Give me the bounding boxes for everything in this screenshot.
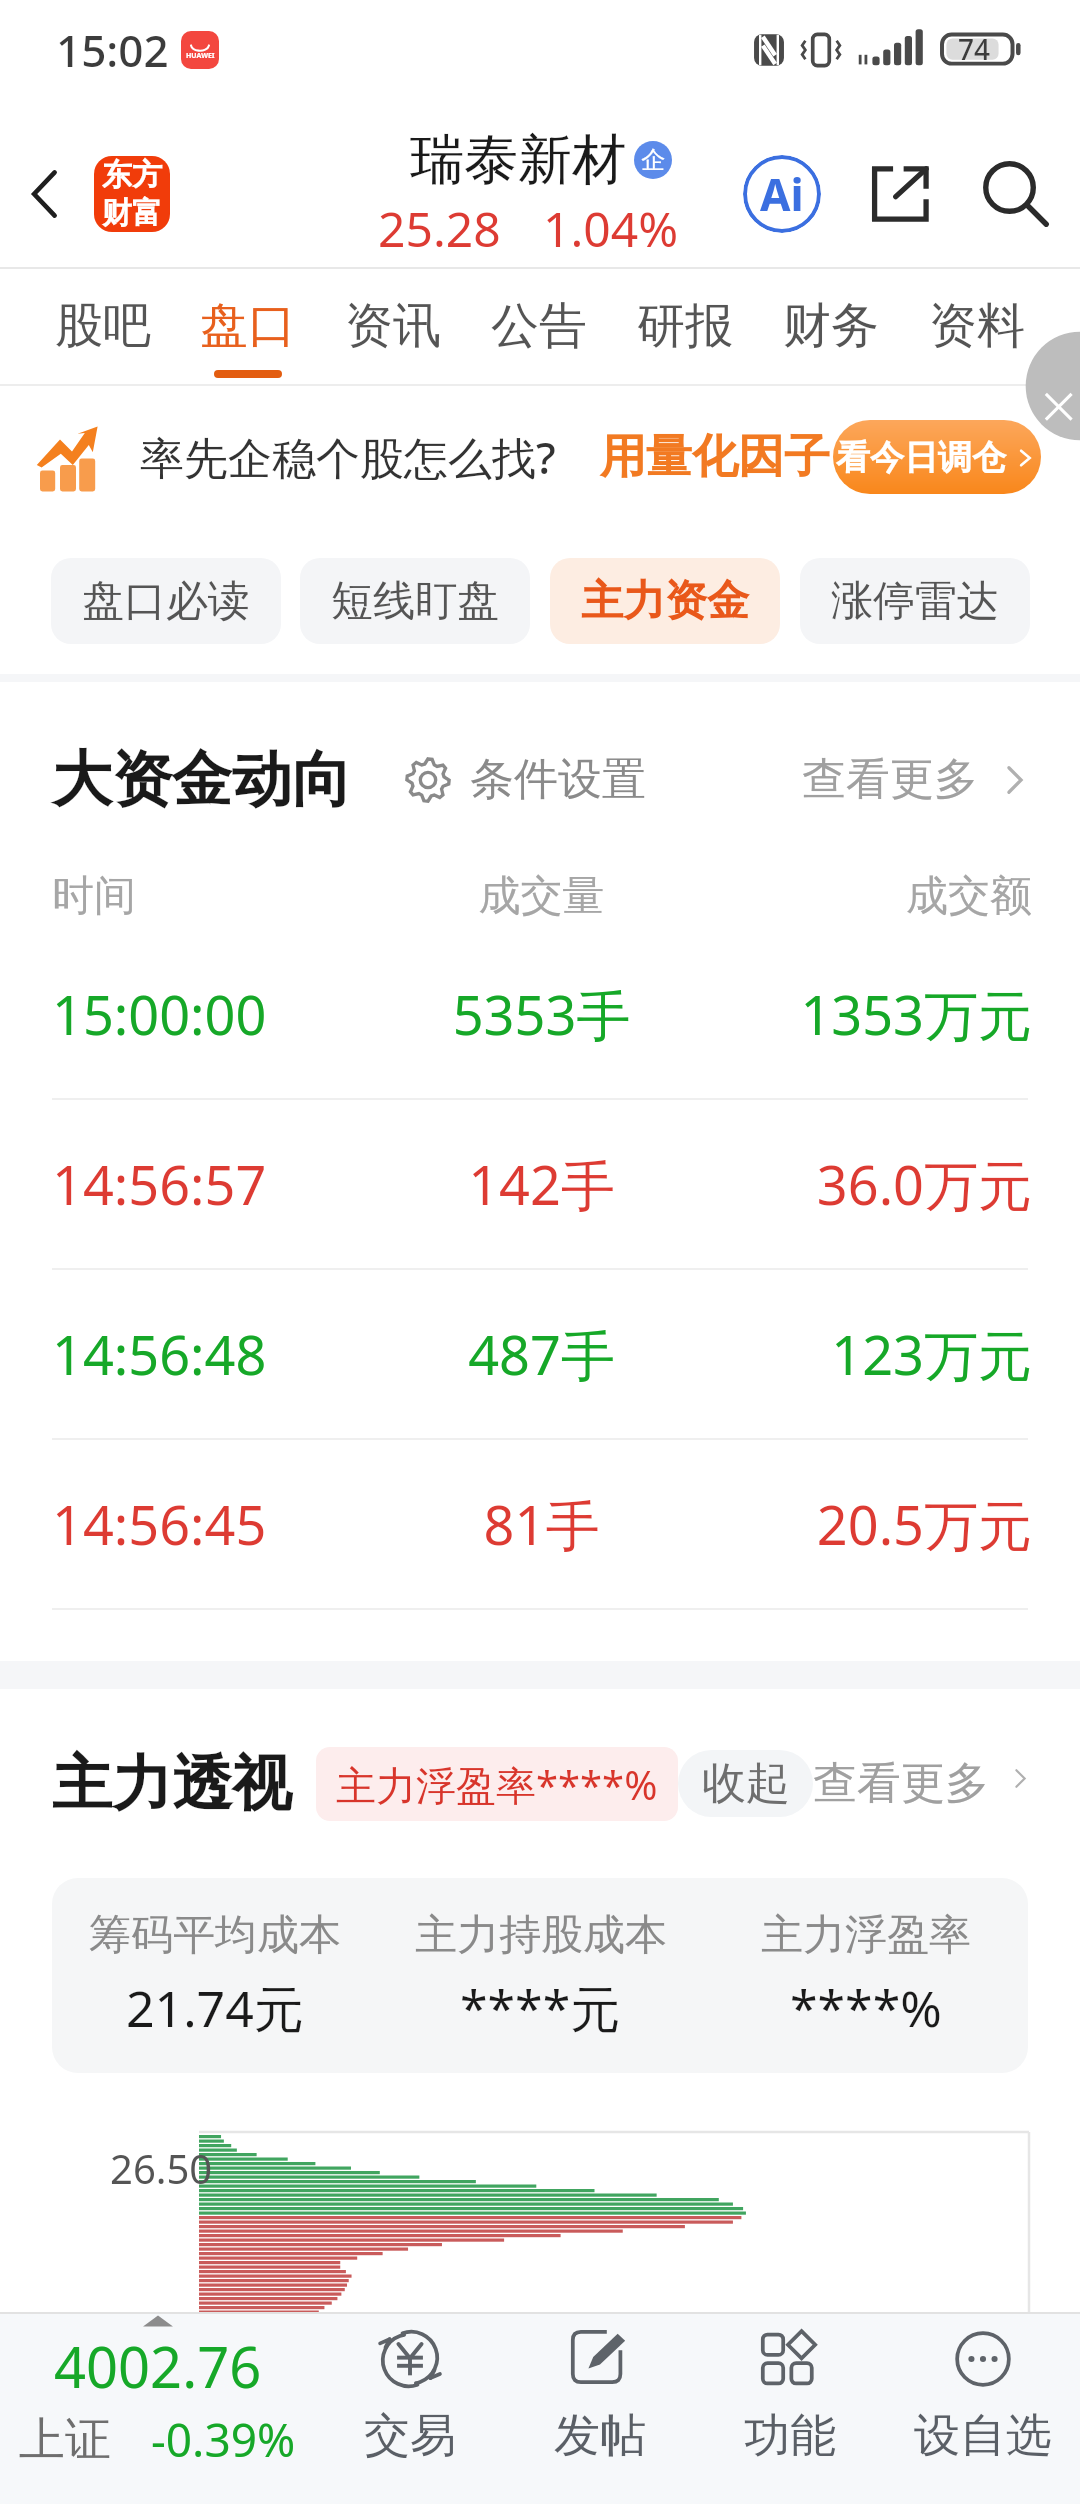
staticText: 主力浮盈率	[761, 1909, 971, 1962]
button[interactable]: East Money	[94, 156, 170, 232]
staticText: 股吧	[55, 296, 151, 356]
staticText: 主力透视	[52, 1746, 292, 1822]
staticText: 成交量	[378, 870, 705, 923]
button[interactable]: 瑞泰新材	[390, 126, 691, 261]
button[interactable]: 主力资金	[550, 558, 780, 644]
staticText: 1.04%	[543, 196, 679, 261]
staticText: 成交额	[705, 870, 1032, 923]
button[interactable]: 功能	[695, 2314, 885, 2504]
staticText: 25.28	[378, 196, 501, 261]
staticText: 查看更多	[813, 1756, 989, 1811]
button[interactable]: 资料	[904, 269, 1050, 384]
button[interactable]: 股吧	[30, 269, 175, 384]
button[interactable]: 主力浮盈率****%	[316, 1747, 678, 1821]
staticText: 15:00:00	[52, 977, 378, 1051]
button[interactable]: 14:56:57	[0, 1100, 1080, 1268]
staticText: 123万元	[705, 1317, 1032, 1391]
staticText: 74	[958, 30, 991, 68]
staticText: 1353万元	[705, 977, 1032, 1051]
button[interactable]: 4002.76	[0, 2314, 314, 2504]
staticText: 4002.76	[54, 2328, 262, 2404]
staticText: -0.39%	[151, 2408, 296, 2471]
button[interactable]: 交易	[314, 2314, 505, 2504]
button[interactable]: 涨停雷达	[800, 558, 1030, 644]
staticText: 14:56:57	[52, 1147, 378, 1221]
staticText: 主力资金	[581, 575, 749, 628]
staticText: 发帖	[554, 2407, 646, 2465]
staticText: ****元	[460, 1974, 621, 2042]
staticText: HUAWEI	[186, 51, 215, 61]
staticText: 上证	[19, 2411, 111, 2469]
button[interactable]: Close ad	[1024, 386, 1080, 442]
staticText: 率先企稳个股怎么找?	[140, 427, 556, 487]
staticText: 企	[641, 145, 665, 175]
staticText: 盘口必读	[82, 575, 250, 628]
staticText: 短线盯盘	[331, 575, 499, 628]
staticText: 看今日调仓	[836, 436, 1006, 479]
button[interactable]: 查看更多	[813, 1756, 1032, 1811]
staticText: 142手	[378, 1147, 705, 1221]
staticText: 交易	[364, 2407, 456, 2465]
staticText: 资讯	[345, 296, 441, 356]
button[interactable]: Back	[0, 120, 92, 267]
staticText: 21.74元	[126, 1974, 304, 2042]
button[interactable]: 发帖	[505, 2314, 695, 2504]
staticText: 收起	[702, 1756, 790, 1811]
staticText: 设自选	[914, 2407, 1052, 2465]
button[interactable]: 收起	[678, 1750, 813, 1817]
button[interactable]: 资讯	[320, 269, 466, 384]
staticText: 36.0万元	[705, 1147, 1032, 1221]
staticText: 公告	[491, 296, 587, 356]
staticText: 瑞泰新材	[410, 126, 626, 194]
staticText: 14:56:48	[52, 1317, 378, 1391]
staticText: 功能	[744, 2407, 836, 2465]
staticText: ****%	[790, 1974, 942, 2042]
staticText: Ai	[760, 164, 804, 224]
staticText: 487手	[378, 1317, 705, 1391]
button[interactable]: 公告	[466, 269, 612, 384]
staticText: 时间	[52, 870, 378, 923]
staticText: 15:02	[56, 20, 169, 80]
button[interactable]: AI assistant	[722, 134, 842, 254]
staticText: 财富	[102, 194, 162, 232]
button[interactable]: Search	[960, 138, 1072, 250]
button[interactable]: 研报	[612, 269, 758, 384]
button[interactable]: 查看更多	[802, 752, 1032, 807]
staticText: 14:56:45	[52, 1487, 378, 1561]
staticText: 财务	[783, 296, 879, 356]
staticText: 研报	[637, 296, 733, 356]
button[interactable]: 盘口必读	[51, 558, 281, 644]
button[interactable]: 设自选	[885, 2314, 1080, 2504]
button[interactable]: Share	[842, 135, 960, 253]
staticText: 盘口	[200, 296, 296, 356]
button[interactable]: 条件设置	[404, 752, 646, 807]
staticText: 筹码平均成本	[89, 1909, 341, 1962]
button[interactable]: 看今日调仓	[833, 420, 1041, 494]
button[interactable]: 14:56:45	[0, 1440, 1080, 1608]
staticText: 资料	[929, 296, 1025, 356]
staticText: 用量化因子	[600, 428, 830, 486]
staticText: 查看更多	[802, 752, 978, 807]
button[interactable]: 短线盯盘	[300, 558, 530, 644]
button[interactable]: 15:00:00	[0, 930, 1080, 1098]
button[interactable]: 14:56:48	[0, 1270, 1080, 1438]
staticText: 5353手	[378, 977, 705, 1051]
staticText: 大资金动向	[52, 742, 352, 818]
staticText: 主力持股成本	[415, 1909, 667, 1962]
staticText: 条件设置	[470, 752, 646, 807]
button[interactable]: 财务	[758, 269, 904, 384]
staticText: 20.5万元	[705, 1487, 1032, 1561]
staticText: 主力浮盈率****%	[336, 1757, 658, 1812]
button[interactable]: 盘口	[175, 269, 320, 384]
staticText: 81手	[378, 1487, 705, 1561]
staticText: 东方	[102, 156, 162, 194]
staticText: 26.50	[110, 2141, 213, 2195]
staticText: 涨停雷达	[831, 575, 999, 628]
